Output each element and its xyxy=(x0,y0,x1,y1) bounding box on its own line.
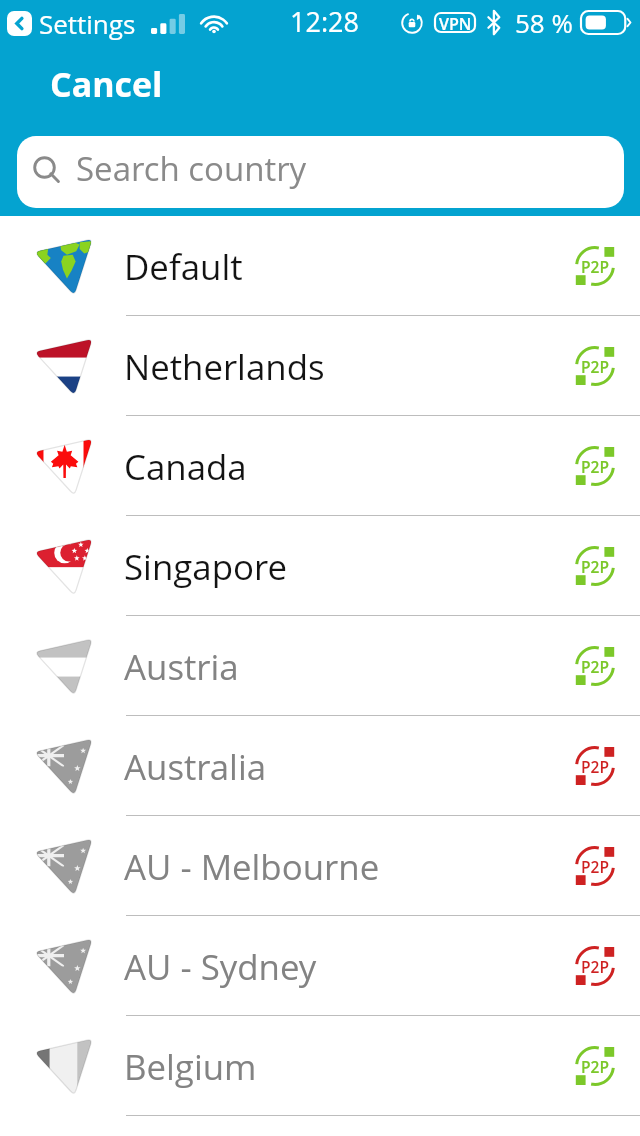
button[interactable]: Back to Settings xyxy=(7,11,32,36)
button[interactable]: Cancel xyxy=(38,55,175,113)
staticText: Austria xyxy=(124,643,239,690)
staticText: AU - Melbourne xyxy=(124,843,380,890)
button[interactable]: Austria xyxy=(0,616,640,716)
staticText: VPN xyxy=(439,13,472,32)
staticText: Belgium xyxy=(124,1043,257,1090)
staticText: P2P xyxy=(581,556,609,577)
other: P2P supported xyxy=(575,646,615,686)
button[interactable]: AU - Sydney xyxy=(0,916,640,1016)
staticText: P2P xyxy=(581,456,609,477)
staticText: P2P xyxy=(581,856,609,877)
staticText: P2P xyxy=(581,756,609,777)
staticText: Search country xyxy=(76,146,307,191)
staticText: P2P xyxy=(581,256,609,277)
staticText: 12:28 xyxy=(290,3,359,40)
button[interactable]: Belgium xyxy=(0,1016,640,1116)
staticText: P2P xyxy=(581,356,609,377)
staticText: Default xyxy=(124,243,243,290)
staticText: Settings xyxy=(39,6,136,41)
button[interactable]: AU - Melbourne xyxy=(0,816,640,916)
other: P2P supported xyxy=(575,246,615,286)
button[interactable]: Default xyxy=(0,216,640,316)
staticText: 58 % xyxy=(515,5,573,40)
staticText: Canada xyxy=(124,443,247,490)
staticText: P2P xyxy=(581,956,609,977)
other: P2P not supported xyxy=(575,846,615,886)
other: P2P not supported xyxy=(575,946,615,986)
button[interactable]: Australia xyxy=(0,716,640,816)
button[interactable]: Canada xyxy=(0,416,640,516)
button[interactable]: Search country xyxy=(17,136,624,208)
staticText: Netherlands xyxy=(124,343,325,390)
staticText: P2P xyxy=(581,1056,609,1077)
staticText: Australia xyxy=(124,743,267,790)
other: P2P supported xyxy=(575,1046,615,1086)
other: P2P not supported xyxy=(575,746,615,786)
staticText: Cancel xyxy=(50,61,163,107)
staticText: P2P xyxy=(581,656,609,677)
staticText: AU - Sydney xyxy=(124,943,317,990)
other: P2P supported xyxy=(575,446,615,486)
staticText: Singapore xyxy=(124,543,288,590)
other: P2P supported xyxy=(575,346,615,386)
button[interactable]: Singapore xyxy=(0,516,640,616)
other: P2P supported xyxy=(575,546,615,586)
button[interactable]: Netherlands xyxy=(0,316,640,416)
